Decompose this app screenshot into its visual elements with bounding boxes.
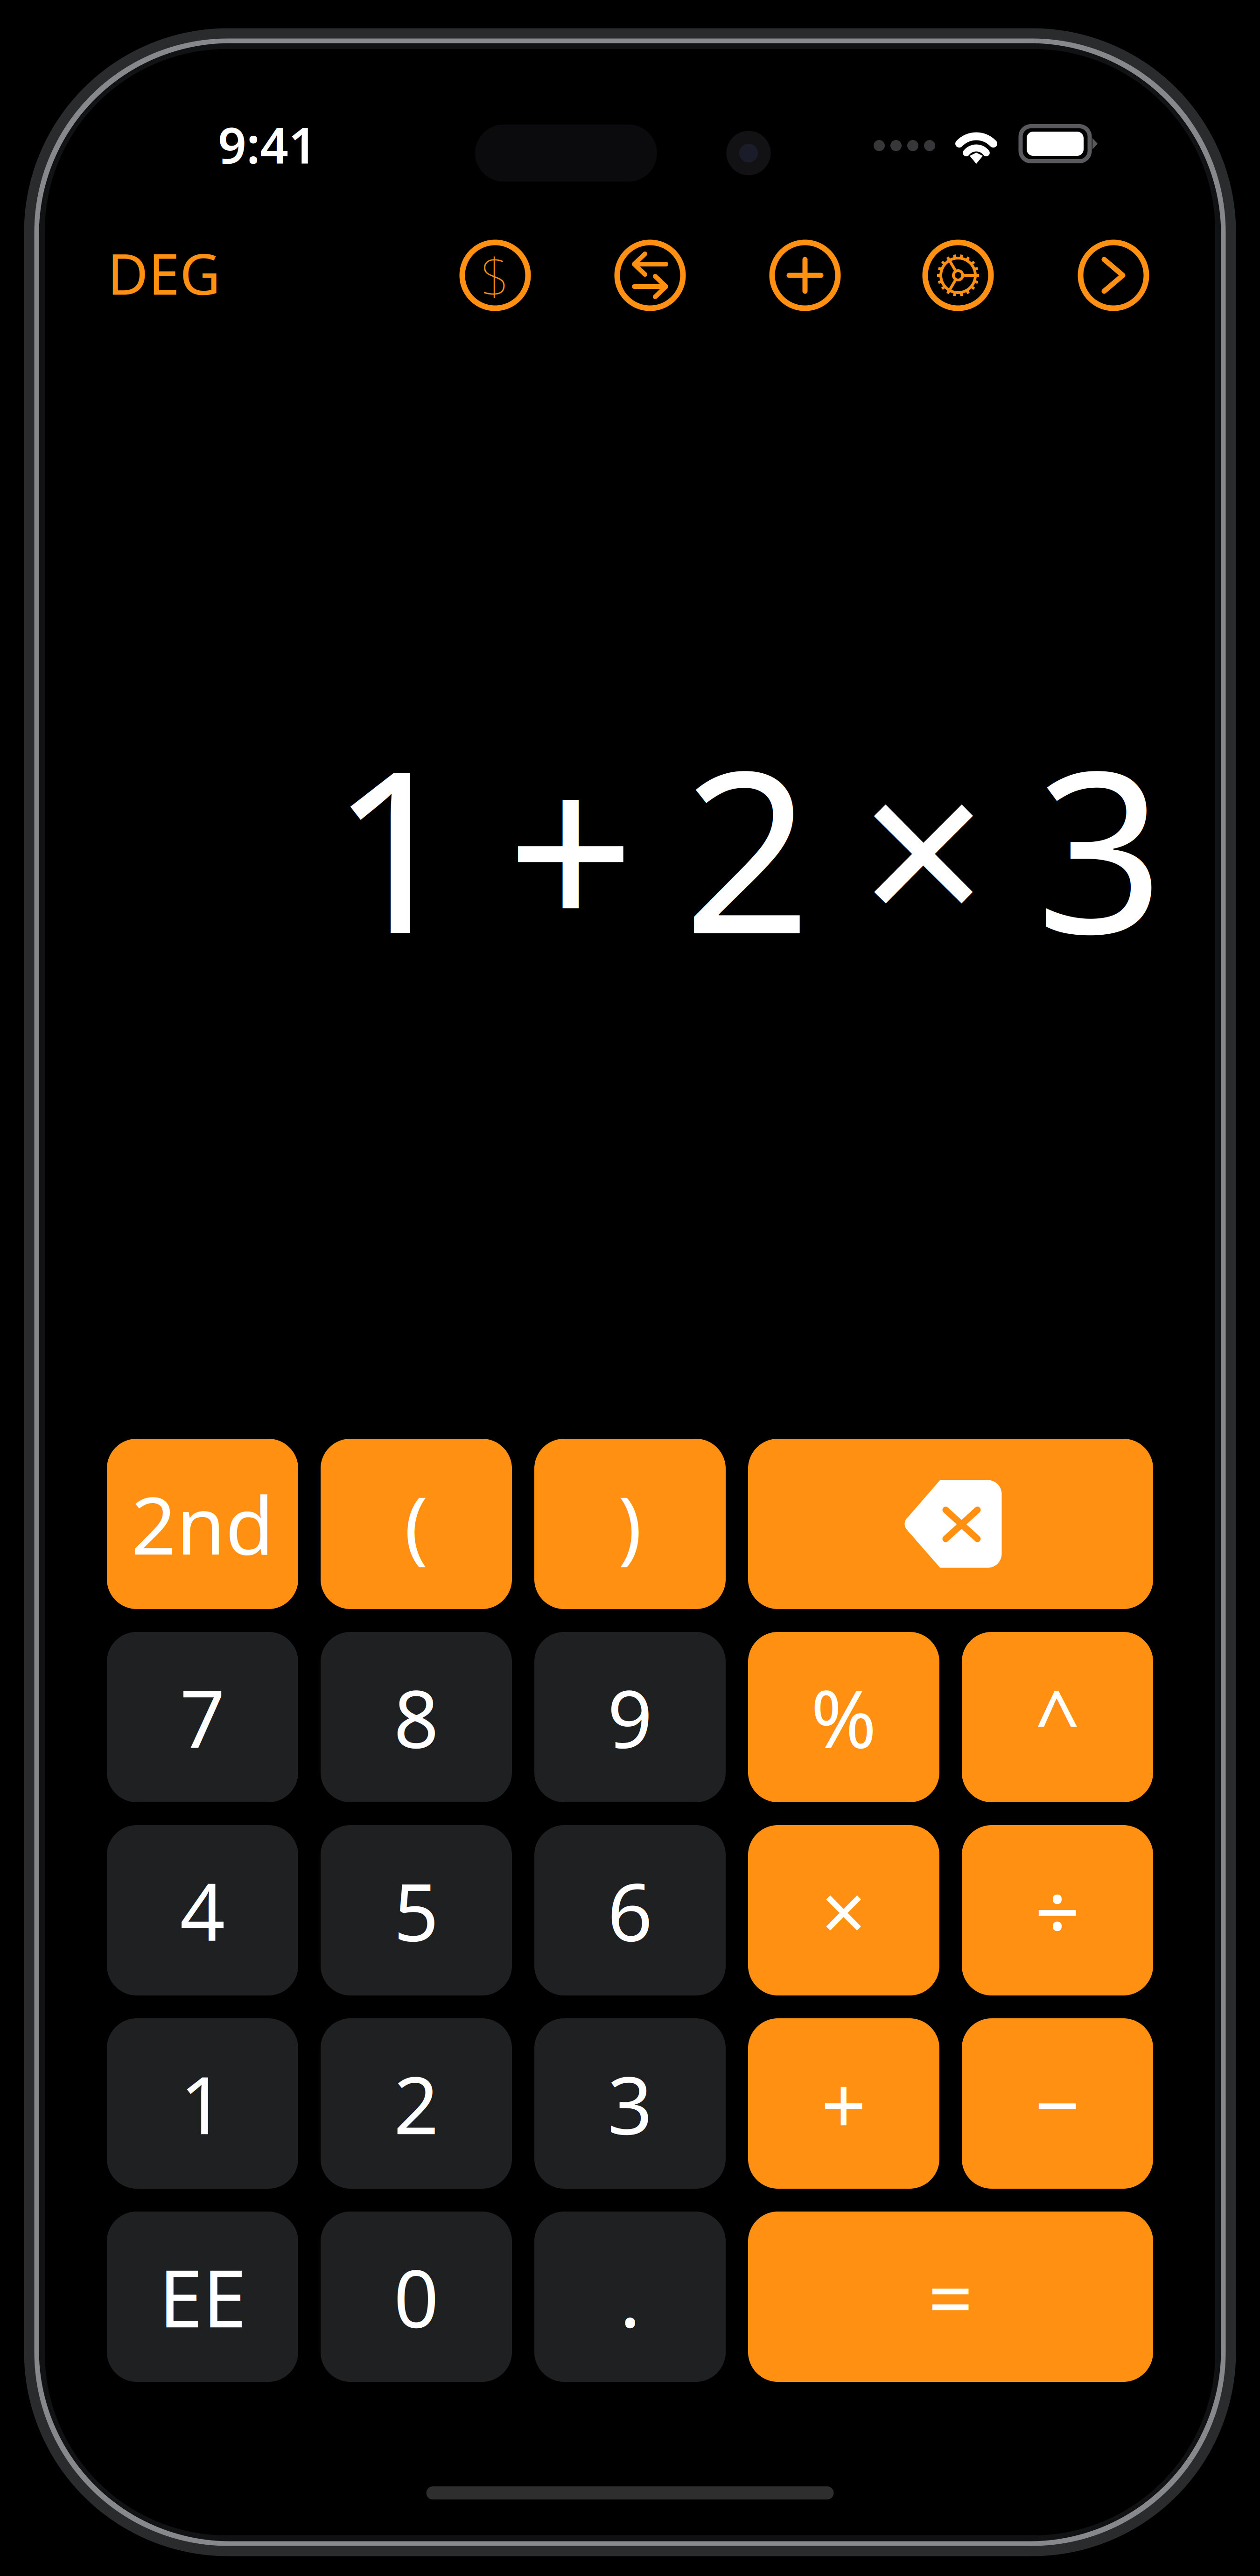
staticText: 3 bbox=[607, 2051, 653, 2156]
staticText: 0 bbox=[394, 2244, 439, 2349]
button[interactable]: 7 bbox=[107, 1632, 298, 1802]
staticText: 9:41 bbox=[218, 111, 317, 177]
staticText: 8 bbox=[394, 1665, 439, 1770]
button[interactable]: ) bbox=[534, 1439, 726, 1609]
button[interactable]: × bbox=[748, 1825, 939, 1995]
button[interactable]: 1 bbox=[107, 2018, 298, 2189]
button[interactable]: 5 bbox=[321, 1825, 512, 1995]
staticText: = bbox=[928, 2244, 973, 2349]
button[interactable]: % bbox=[748, 1632, 939, 1802]
staticText: ( bbox=[404, 1471, 428, 1576]
button[interactable]: Equals bbox=[748, 2212, 1153, 2382]
button[interactable]: 3 bbox=[534, 2018, 726, 2189]
staticText: − bbox=[1035, 2051, 1080, 2156]
button[interactable]: Convert bbox=[603, 229, 697, 322]
staticText: DEG bbox=[107, 236, 220, 310]
staticText: 7 bbox=[180, 1665, 225, 1770]
button[interactable]: 2 bbox=[321, 2018, 512, 2189]
button[interactable]: 9 bbox=[534, 1632, 726, 1802]
staticText: $ bbox=[481, 241, 510, 309]
button[interactable]: More bbox=[1067, 229, 1160, 322]
staticText: 1 bbox=[180, 2051, 225, 2156]
button[interactable]: EE bbox=[107, 2212, 298, 2382]
button[interactable]: Settings bbox=[911, 229, 1005, 322]
button[interactable]: Add bbox=[758, 229, 852, 322]
staticText: 1 + 2 × 3 bbox=[330, 697, 1164, 995]
staticText: 9 bbox=[607, 1665, 653, 1770]
staticText: 6 bbox=[607, 1858, 653, 1963]
staticText: 4 bbox=[180, 1858, 225, 1963]
staticText: ÷ bbox=[1035, 1858, 1080, 1963]
staticText: 2nd bbox=[131, 1471, 274, 1576]
staticText: % bbox=[811, 1665, 877, 1770]
button[interactable]: Currency bbox=[448, 229, 542, 322]
staticText: 2 bbox=[394, 2051, 439, 2156]
button[interactable]: ( bbox=[321, 1439, 512, 1609]
staticText: 5 bbox=[394, 1858, 439, 1963]
staticText: × bbox=[821, 1858, 866, 1963]
button[interactable]: Delete bbox=[748, 1439, 1153, 1609]
button[interactable]: 2nd bbox=[107, 1439, 298, 1609]
button[interactable]: + bbox=[748, 2018, 939, 2189]
button[interactable]: 4 bbox=[107, 1825, 298, 1995]
staticText: . bbox=[619, 2244, 640, 2349]
button[interactable]: ^ bbox=[962, 1632, 1153, 1802]
button[interactable]: . bbox=[534, 2212, 726, 2382]
button[interactable]: ÷ bbox=[962, 1825, 1153, 1995]
button[interactable]: 8 bbox=[321, 1632, 512, 1802]
staticText: + bbox=[821, 2051, 866, 2156]
button[interactable]: 6 bbox=[534, 1825, 726, 1995]
button[interactable]: DEG bbox=[89, 217, 239, 329]
button[interactable]: 0 bbox=[321, 2212, 512, 2382]
staticText: EE bbox=[159, 2244, 246, 2349]
button[interactable]: − bbox=[962, 2018, 1153, 2189]
staticText: ^ bbox=[1035, 1665, 1080, 1770]
staticText: ) bbox=[618, 1471, 642, 1576]
